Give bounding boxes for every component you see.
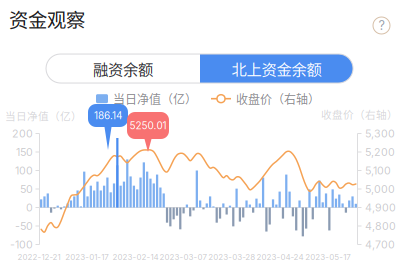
staticText: 收盘价（右轴） — [321, 106, 398, 122]
staticText: 融资余额 — [93, 57, 153, 80]
staticText: 2023-02-14 — [112, 252, 158, 262]
staticText: 2023-05-17 — [305, 252, 351, 262]
staticText: 资金观察 — [9, 5, 85, 33]
staticText: 2023-01-17 — [65, 252, 109, 262]
staticText: 4,900 — [365, 201, 396, 214]
staticText: 收盘价（右轴） — [236, 90, 320, 107]
staticText: 186.14 — [94, 109, 122, 122]
staticText: 4,800 — [365, 219, 396, 232]
staticText: 当日净值（亿） — [5, 108, 82, 123]
staticText: 5,000 — [365, 182, 395, 195]
staticText: 5250.01 — [129, 119, 166, 132]
staticText: -100 — [10, 238, 33, 251]
staticText: 当日净值（亿） — [113, 90, 197, 107]
button[interactable]: Help — [373, 17, 390, 34]
staticText: 100 — [15, 164, 33, 177]
staticText: 150 — [16, 145, 33, 158]
staticText: ? — [378, 18, 384, 33]
button[interactable]: 北上资金余额 — [200, 54, 353, 83]
staticText: 50 — [20, 182, 33, 195]
staticText: 5,200 — [365, 145, 395, 158]
staticText: -50 — [15, 219, 33, 232]
button[interactable]: 融资余额 — [46, 54, 200, 83]
staticText: 200 — [12, 127, 33, 140]
staticText: 北上资金余额 — [231, 57, 321, 80]
staticText: 4,700 — [365, 238, 395, 251]
staticText: 2022-12-21 — [17, 252, 60, 262]
staticText: 2023-03-28 — [208, 252, 255, 262]
staticText: 2023-03-07 — [160, 252, 208, 262]
staticText: 2023-04-24 — [256, 252, 303, 262]
staticText: 5,100 — [365, 164, 391, 177]
staticText: 0 — [26, 201, 33, 214]
staticText: 5,300 — [365, 127, 395, 140]
